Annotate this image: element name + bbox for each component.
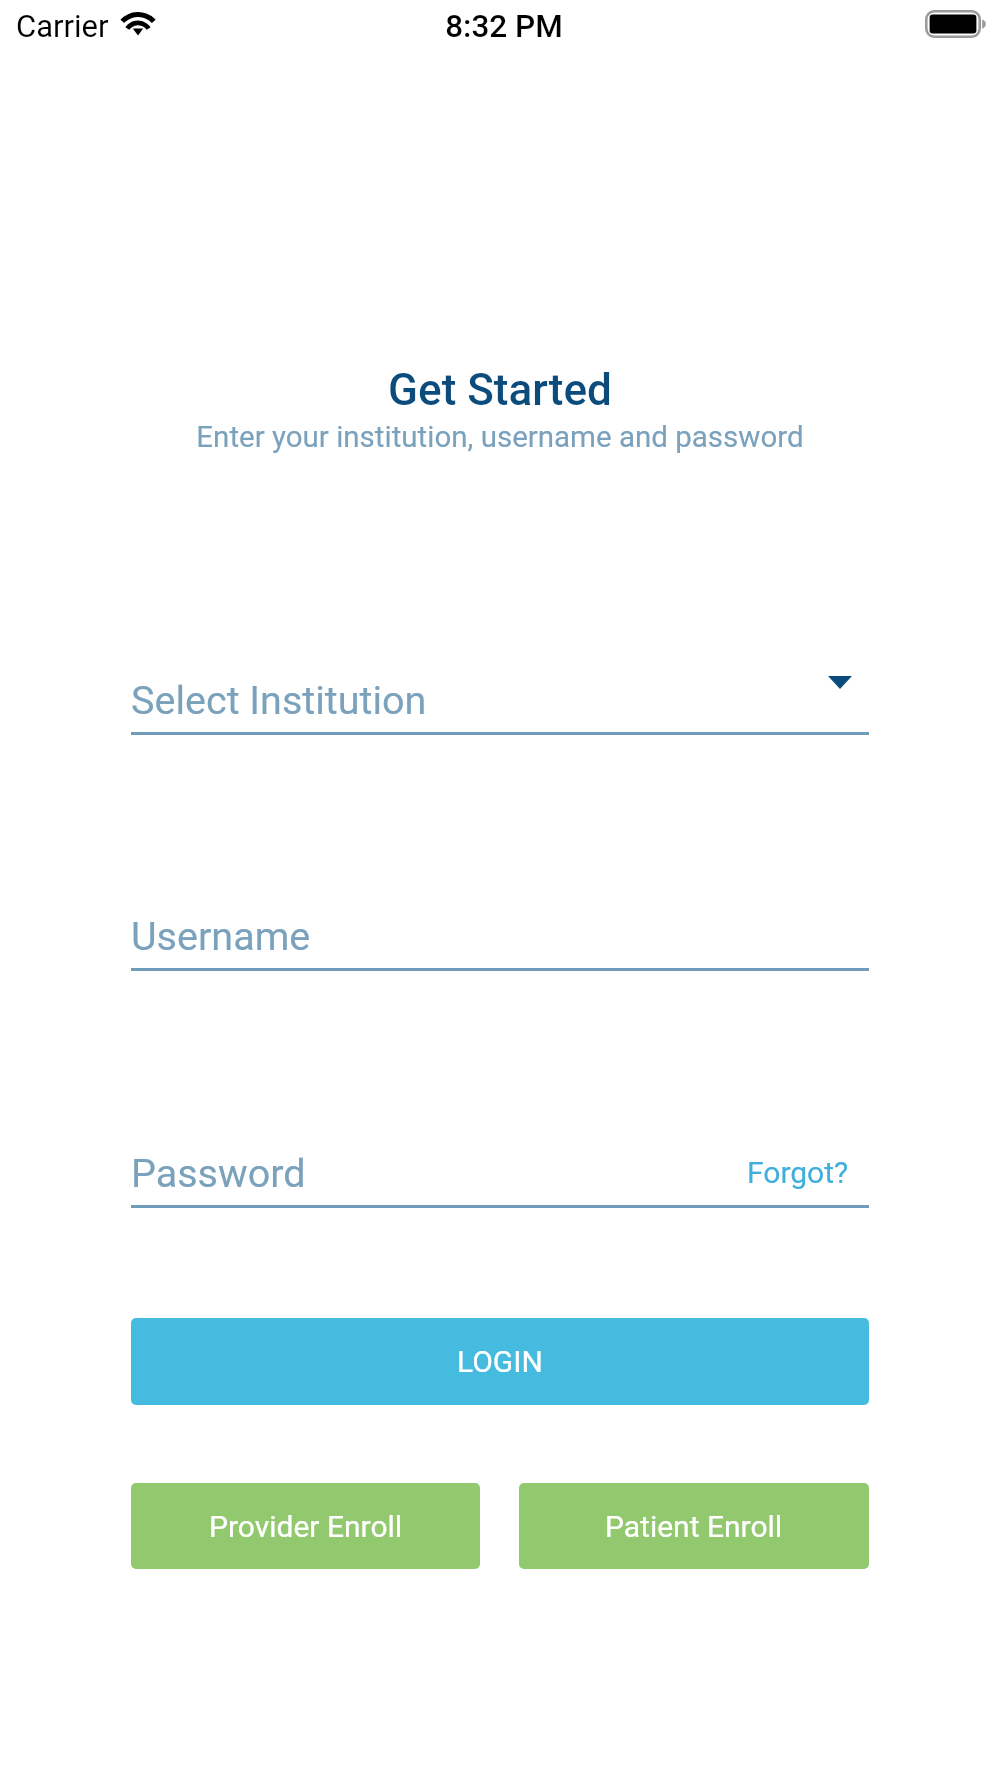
other: Battery full bbox=[925, 10, 988, 38]
button[interactable]: Patient Enroll bbox=[519, 1483, 869, 1569]
staticText: LOGIN bbox=[457, 1344, 543, 1379]
staticText: Forgot? bbox=[747, 1155, 849, 1190]
staticText: Patient Enroll bbox=[605, 1509, 783, 1544]
other: Show institution list bbox=[828, 676, 852, 689]
button[interactable]: Password bbox=[131, 1138, 869, 1208]
staticText: Carrier bbox=[16, 8, 109, 44]
staticText: Provider Enroll bbox=[209, 1509, 403, 1544]
staticText: Username bbox=[131, 913, 311, 959]
button[interactable]: LOGIN bbox=[131, 1318, 869, 1405]
staticText: Enter your institution, username and pas… bbox=[0, 420, 1000, 455]
staticText: Get Started bbox=[0, 364, 1000, 416]
staticText: Select Institution bbox=[131, 677, 427, 723]
button[interactable]: Forgot? bbox=[747, 1138, 849, 1194]
staticText: 8:32 PM bbox=[4, 8, 1000, 45]
button[interactable]: Provider Enroll bbox=[131, 1483, 480, 1569]
button[interactable]: Username bbox=[131, 901, 869, 971]
button[interactable]: Select Institution bbox=[131, 665, 869, 735]
other: Wi-Fi signal bbox=[120, 10, 156, 36]
staticText: Password bbox=[131, 1150, 306, 1196]
